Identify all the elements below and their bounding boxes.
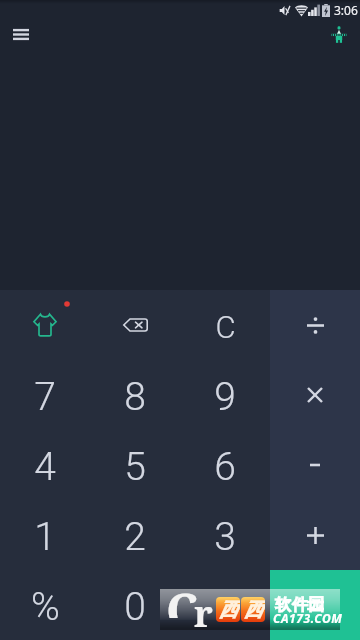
other: Divide: [305, 315, 325, 335]
other: Minus: [305, 455, 325, 475]
other: Plus: [304, 524, 326, 546]
staticText: 1: [34, 514, 56, 560]
staticText: %: [31, 584, 60, 630]
staticText: 8: [124, 374, 146, 420]
staticText: C: [215, 309, 236, 345]
button[interactable]: 3: [180, 500, 270, 570]
button[interactable]: Robot assistant: [323, 20, 355, 48]
staticText: 9: [214, 374, 236, 420]
button[interactable]: Plus: [270, 500, 360, 570]
staticText: 7: [34, 374, 56, 420]
button[interactable]: C: [180, 290, 270, 360]
staticText: 5: [124, 444, 146, 490]
staticText: r: [194, 589, 213, 630]
button[interactable]: 2: [90, 500, 180, 570]
staticText: 0: [124, 584, 146, 630]
button[interactable]: 1: [0, 500, 90, 570]
staticText: 3:06: [334, 2, 358, 18]
staticText: 6: [214, 444, 236, 490]
button[interactable]: 7: [0, 360, 90, 430]
button[interactable]: Multiply: [270, 360, 360, 430]
button[interactable]: Clothes: [0, 290, 90, 360]
button[interactable]: 5: [90, 430, 180, 500]
button[interactable]: 6: [180, 430, 270, 500]
staticText: 3: [214, 514, 236, 560]
button[interactable]: 4: [0, 430, 90, 500]
button[interactable]: 0: [90, 570, 180, 640]
button[interactable]: .: [180, 570, 270, 640]
button[interactable]: Equals: [270, 570, 360, 640]
button[interactable]: Menu: [5, 20, 37, 48]
staticText: C: [166, 577, 199, 618]
other: Multiply: [305, 385, 325, 405]
button[interactable]: 8: [90, 360, 180, 430]
staticText: 软件园: [275, 595, 326, 615]
staticText: 2: [124, 514, 146, 560]
button[interactable]: 9: [180, 360, 270, 430]
button[interactable]: %: [0, 570, 90, 640]
staticText: .: [220, 584, 230, 630]
button[interactable]: Divide: [270, 290, 360, 360]
staticText: 4: [34, 444, 56, 490]
staticText: 西: [244, 598, 263, 622]
button[interactable]: Backspace: [90, 290, 180, 360]
staticText: CA173.COM: [273, 610, 343, 626]
staticText: 西: [219, 598, 238, 622]
button[interactable]: Minus: [270, 430, 360, 500]
